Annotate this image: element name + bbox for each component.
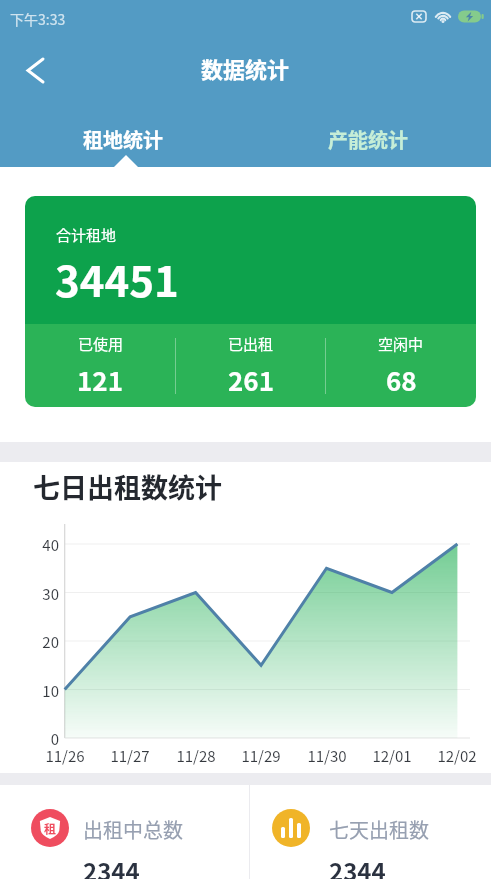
staticText: 11/28 bbox=[169, 745, 223, 767]
button[interactable] bbox=[14, 49, 56, 91]
staticText: 已使用 bbox=[78, 333, 124, 355]
staticText: 12/01 bbox=[365, 745, 419, 767]
button[interactable]: 已使用 bbox=[25, 324, 176, 407]
staticText: 空闲中 bbox=[378, 333, 424, 355]
staticText: 30 bbox=[0, 583, 59, 605]
staticText: 2344 bbox=[329, 853, 386, 879]
button[interactable]: 产能统计 bbox=[245, 100, 491, 167]
staticText: 七天出租数 bbox=[329, 815, 429, 844]
staticText: 11/26 bbox=[38, 745, 92, 767]
button[interactable]: 合计租地 bbox=[25, 196, 476, 407]
button[interactable]: 租 bbox=[0, 785, 250, 879]
button[interactable]: 已出租 bbox=[176, 324, 326, 407]
staticText: 2344 bbox=[83, 853, 140, 879]
staticText: 11/29 bbox=[234, 745, 288, 767]
staticText: 七日出租数统计 bbox=[33, 467, 222, 506]
staticText: 121 bbox=[77, 361, 124, 399]
staticText: 租 bbox=[44, 820, 57, 837]
staticText: 40 bbox=[0, 534, 59, 556]
staticText: 合计租地 bbox=[56, 224, 117, 246]
staticText: 11/30 bbox=[300, 745, 354, 767]
button[interactable]: 空闲中 bbox=[326, 324, 476, 407]
staticText: 11/27 bbox=[103, 745, 157, 767]
staticText: 12/02 bbox=[430, 745, 484, 767]
button[interactable]: 租地统计 bbox=[0, 100, 245, 167]
staticText: 出租中总数 bbox=[83, 815, 183, 844]
staticText: 34451 bbox=[55, 248, 179, 309]
staticText: 租地统计 bbox=[83, 125, 163, 154]
staticText: 已出租 bbox=[228, 333, 274, 355]
staticText: 10 bbox=[0, 680, 59, 702]
button[interactable]: 七天出租数 bbox=[250, 785, 491, 879]
staticText: 产能统计 bbox=[328, 125, 408, 154]
staticText: 68 bbox=[386, 361, 417, 399]
staticText: 20 bbox=[0, 631, 59, 653]
staticText: 数据统计 bbox=[201, 52, 290, 84]
staticText: 下午3:33 bbox=[10, 9, 66, 29]
staticText: 261 bbox=[228, 361, 275, 399]
staticText: 0 bbox=[0, 728, 59, 750]
